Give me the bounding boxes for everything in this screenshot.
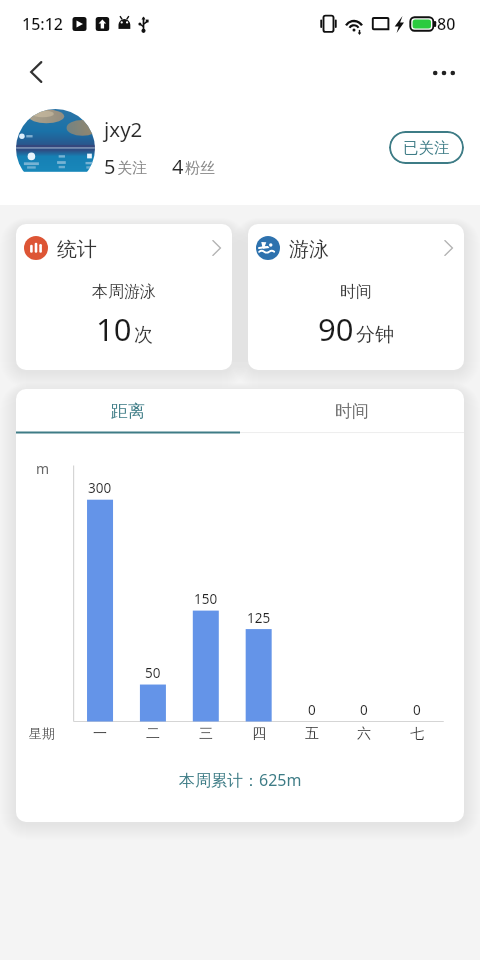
staticText: 距离: [111, 401, 145, 422]
button[interactable]: 已关注: [389, 131, 464, 164]
staticText: 二: [146, 725, 160, 743]
button[interactable]: Back: [16, 52, 56, 92]
staticText: 四: [252, 725, 266, 743]
staticText: 80: [437, 13, 456, 35]
staticText: 次: [134, 323, 153, 347]
staticText: 粉丝: [185, 159, 215, 178]
staticText: 90: [318, 308, 354, 350]
staticText: 0: [413, 701, 421, 719]
staticText: m: [36, 459, 50, 478]
staticText: 4: [172, 153, 184, 180]
staticText: 125: [247, 609, 271, 627]
staticText: 15:12: [22, 13, 63, 35]
staticText: 10: [96, 308, 132, 350]
staticText: 一: [93, 725, 107, 743]
button[interactable]: 时间: [240, 389, 464, 433]
staticText: 五: [305, 725, 319, 743]
staticText: 0: [308, 701, 316, 719]
staticText: 150: [194, 590, 218, 608]
staticText: 分钟: [356, 323, 394, 347]
button[interactable]: Profile picture: [16, 109, 95, 188]
staticText: 统计: [57, 237, 97, 262]
staticText: 50: [145, 664, 161, 682]
staticText: 七: [410, 725, 424, 743]
staticText: 六: [357, 725, 371, 743]
staticText: 三: [199, 725, 213, 743]
staticText: 时间: [335, 401, 369, 422]
staticText: 关注: [117, 159, 147, 178]
button[interactable]: More options: [424, 53, 464, 93]
staticText: 星期: [29, 725, 55, 741]
staticText: 时间: [340, 282, 372, 302]
staticText: jxy2: [104, 115, 143, 143]
staticText: 5: [104, 153, 116, 180]
staticText: 已关注: [403, 138, 450, 158]
button[interactable]: 统计: [16, 224, 232, 370]
staticText: 0: [360, 701, 368, 719]
staticText: 300: [88, 479, 112, 497]
staticText: 本周累计：625m: [179, 769, 302, 791]
button[interactable]: 距离: [16, 389, 240, 433]
staticText: 游泳: [289, 237, 329, 262]
staticText: 本周游泳: [92, 282, 156, 302]
button[interactable]: 游泳: [248, 224, 464, 370]
